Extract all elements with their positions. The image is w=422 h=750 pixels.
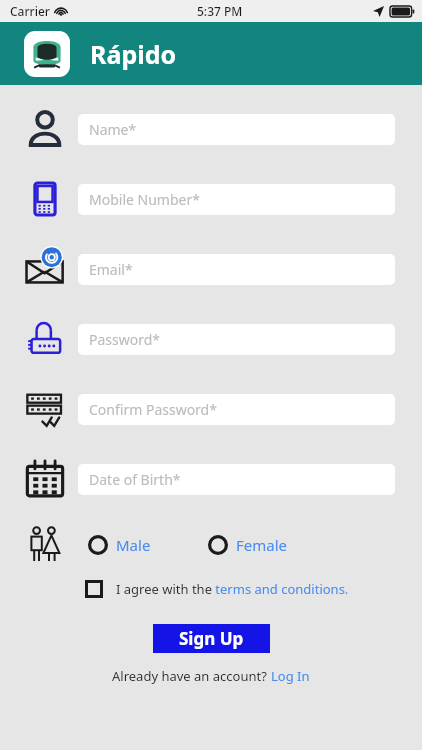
staticText: Date of Birth* [89,470,181,489]
staticText: 5:37 PM [197,3,243,19]
button[interactable]: Password* [78,324,395,355]
staticText: Female [236,535,288,555]
button[interactable]: Confirm Password* [78,394,395,425]
staticText: Name* [89,120,137,139]
button[interactable]: Mobile Number* [78,184,395,215]
button[interactable]: Male [88,531,151,559]
button[interactable]: Log In [271,667,310,685]
staticText: Password* [89,330,161,349]
staticText: Male [116,535,151,555]
staticText: Sign Up [179,627,244,650]
button[interactable]: I agree with the terms and conditions. [85,580,422,598]
staticText: I agree with the terms and conditions. [116,580,349,598]
button[interactable]: Date of Birth* [78,464,395,495]
staticText: Confirm Password* [89,400,217,419]
staticText: Mobile Number* [89,190,200,209]
staticText: Already have an account? [112,667,271,685]
button[interactable]: Name* [78,114,395,145]
staticText: Log In [271,667,310,685]
staticText: Rápido [90,37,177,71]
button[interactable]: Email* [78,254,395,285]
button[interactable]: Sign Up [153,624,270,653]
button[interactable]: App icon [24,31,70,77]
staticText: Carrier [10,3,50,19]
staticText: Email* [89,260,133,279]
button[interactable]: Female [208,531,288,559]
